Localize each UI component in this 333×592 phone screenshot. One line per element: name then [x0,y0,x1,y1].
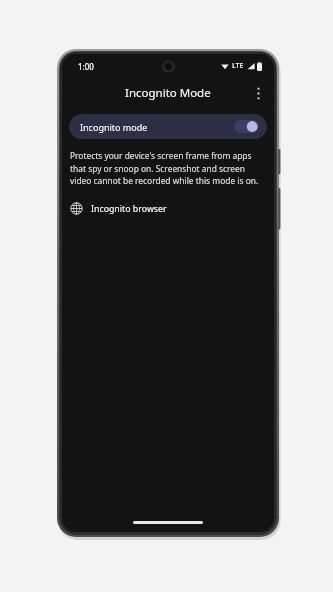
staticText: Protects your device's screen frame from… [70,150,266,186]
staticText: Incognito mode [80,121,148,133]
button[interactable]: Incognito browser [62,199,274,218]
staticText: Incognito browser [91,203,167,215]
button[interactable]: Incognito mode [69,114,267,139]
button[interactable]: Incognito mode toggle, on [234,120,259,133]
button[interactable]: More options [246,81,270,105]
staticText: 1:00 [78,61,94,72]
staticText: Incognito Mode [125,85,211,101]
staticText: LTE [232,61,244,71]
